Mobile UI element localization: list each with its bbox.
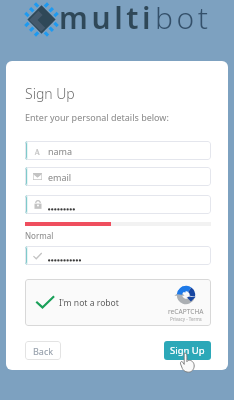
staticText: I'm not a robot — [59, 297, 119, 309]
button[interactable]: A — [25, 141, 211, 160]
staticText: bot — [155, 0, 212, 29]
other: Multibot logo — [26, 4, 57, 35]
staticText: Normal — [25, 230, 54, 241]
staticText: Sign Up — [25, 84, 75, 103]
staticText: multi — [59, 0, 155, 29]
button[interactable]: Sign Up — [164, 341, 211, 360]
staticText: reCAPTCHA — [168, 307, 204, 316]
button[interactable]: email — [25, 167, 211, 186]
button[interactable] — [25, 246, 211, 265]
button[interactable] — [25, 195, 211, 214]
staticText: Sign Up — [170, 344, 205, 357]
staticText: Enter your personal details below: — [25, 111, 169, 123]
staticText: A — [34, 146, 41, 155]
staticText: email — [48, 171, 72, 183]
button[interactable]: Back — [25, 341, 61, 360]
staticText: nama — [48, 145, 73, 157]
staticText: Back — [33, 345, 54, 357]
staticText: Privacy - Terms — [170, 316, 202, 322]
button[interactable]: I'm not a robot — [25, 279, 211, 326]
